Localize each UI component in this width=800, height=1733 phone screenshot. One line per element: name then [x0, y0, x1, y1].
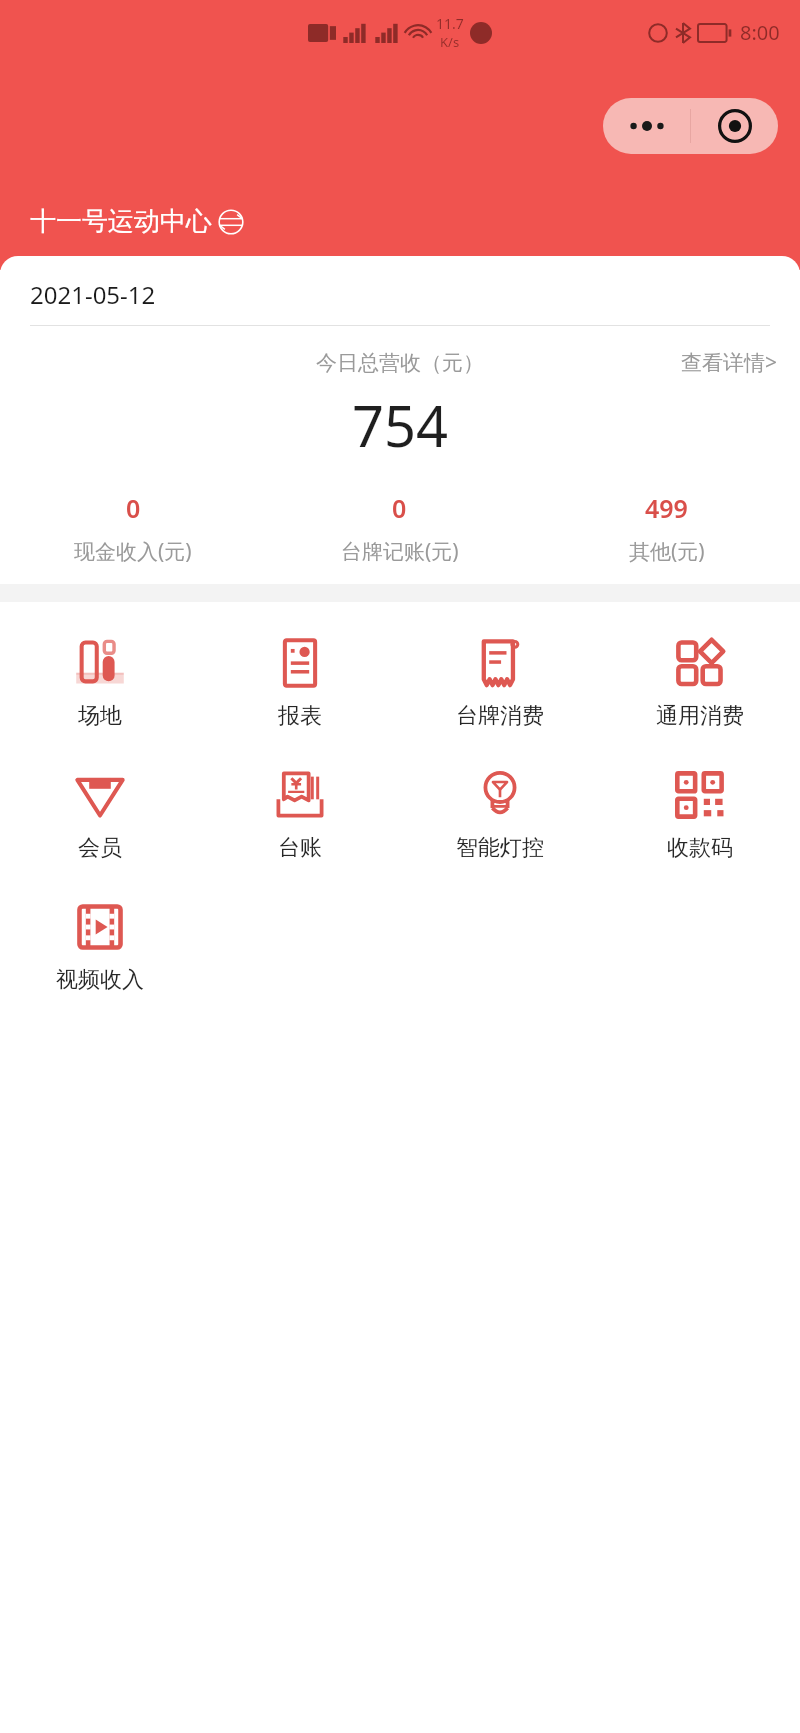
- staticText: 0: [126, 491, 141, 525]
- button[interactable]: 台牌消费: [400, 636, 600, 730]
- button[interactable]: 499: [533, 491, 800, 566]
- staticText: 智能灯控: [456, 834, 544, 862]
- staticText: 其他(元): [629, 537, 705, 566]
- button[interactable]: 报表: [200, 636, 400, 730]
- staticText: 8:00: [740, 19, 780, 46]
- staticText: 11.7: [436, 14, 464, 33]
- button[interactable]: 会员: [0, 768, 200, 862]
- staticText: 今日总营收（元）: [316, 350, 484, 376]
- staticText: 收款码: [667, 834, 733, 862]
- button[interactable]: [603, 98, 778, 154]
- button[interactable]: 通用消费: [600, 636, 800, 730]
- button[interactable]: 视频收入: [0, 900, 200, 994]
- staticText: 会员: [78, 834, 122, 862]
- button[interactable]: 十一号运动中心: [30, 205, 244, 238]
- staticText: 通用消费: [656, 702, 744, 730]
- staticText: K/s: [440, 33, 460, 51]
- button[interactable]: 收款码: [600, 768, 800, 862]
- button[interactable]: 智能灯控: [400, 768, 600, 862]
- staticText: 台牌消费: [456, 702, 544, 730]
- button[interactable]: 2021-05-12: [30, 278, 156, 311]
- button[interactable]: 场地: [0, 636, 200, 730]
- staticText: 现金收入(元): [74, 537, 192, 566]
- button[interactable]: 台账: [200, 768, 400, 862]
- staticText: 0: [392, 491, 407, 525]
- button[interactable]: 0: [0, 491, 266, 566]
- staticText: 754: [0, 387, 800, 463]
- button[interactable]: 0: [266, 491, 533, 566]
- button[interactable]: 查看详情>: [681, 348, 778, 377]
- staticText: 场地: [78, 702, 122, 730]
- staticText: 十一号运动中心: [30, 205, 212, 238]
- staticText: 报表: [278, 702, 322, 730]
- staticText: 499: [645, 491, 688, 525]
- staticText: 台账: [278, 834, 322, 862]
- staticText: 视频收入: [56, 966, 144, 994]
- staticText: 台牌记账(元): [341, 537, 459, 566]
